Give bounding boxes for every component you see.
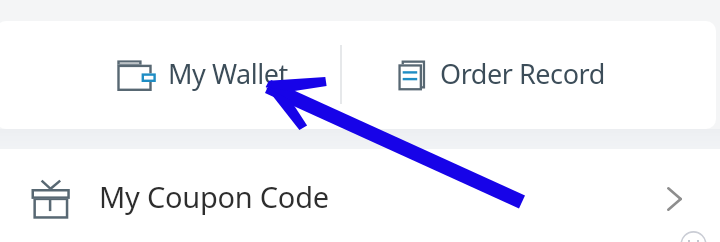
button[interactable]: My Coupon Code xyxy=(0,149,720,242)
other: Customer service xyxy=(660,225,720,242)
staticText: My Wallet xyxy=(168,55,288,92)
staticText: My Coupon Code xyxy=(99,177,329,216)
other: Open xyxy=(667,187,682,211)
button[interactable]: My Wallet xyxy=(0,21,341,129)
button[interactable]: Order Record xyxy=(343,21,720,129)
staticText: Order Record xyxy=(440,55,605,92)
